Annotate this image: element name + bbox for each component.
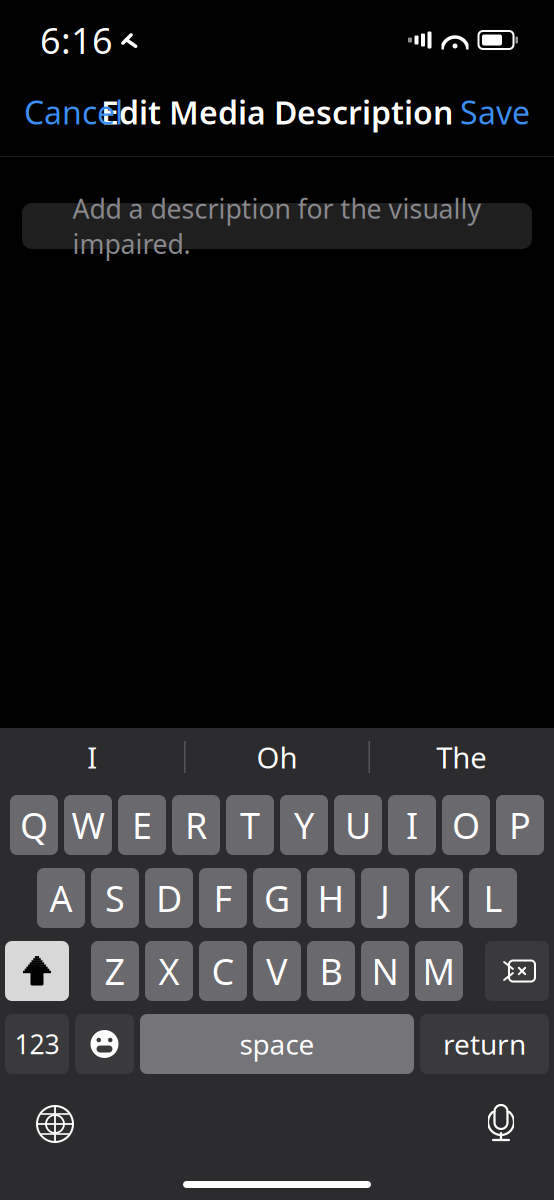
button[interactable]: U xyxy=(334,795,382,855)
staticText: A xyxy=(49,874,72,922)
staticText: S xyxy=(105,874,125,922)
button[interactable]: I xyxy=(388,795,436,855)
button[interactable]: R xyxy=(172,795,220,855)
staticText: J xyxy=(380,874,390,922)
staticText: 123 xyxy=(14,1026,59,1062)
button[interactable]: D xyxy=(145,868,193,928)
button[interactable]: space xyxy=(140,1014,414,1074)
button[interactable]: Save xyxy=(436,77,554,147)
staticText: T xyxy=(240,801,260,849)
button[interactable]: S xyxy=(91,868,139,928)
button[interactable]: return xyxy=(420,1014,549,1074)
button[interactable]: F xyxy=(199,868,247,928)
staticText: U xyxy=(345,801,371,849)
button[interactable]: Shift xyxy=(5,941,69,1001)
staticText: The xyxy=(436,737,487,776)
button[interactable]: P xyxy=(496,795,544,855)
staticText: Edit Media Description xyxy=(101,91,453,133)
staticText: 6:16 xyxy=(40,16,113,64)
staticText: W xyxy=(71,801,104,849)
button[interactable]: E xyxy=(118,795,166,855)
staticText: Oh xyxy=(256,737,297,776)
staticText: I xyxy=(87,737,97,776)
button[interactable]: Oh xyxy=(185,728,369,786)
button[interactable]: Y xyxy=(280,795,328,855)
button[interactable]: Emoji xyxy=(75,1014,134,1074)
staticText: D xyxy=(156,874,182,922)
staticText: M xyxy=(422,947,455,995)
button[interactable]: T xyxy=(226,795,274,855)
staticText: P xyxy=(509,801,531,849)
staticText: V xyxy=(266,947,288,995)
button[interactable]: H xyxy=(307,868,355,928)
staticText: Add a description for the visually impai… xyxy=(72,191,481,261)
staticText: B xyxy=(319,947,342,995)
staticText: space xyxy=(239,1025,314,1063)
button[interactable]: 123 xyxy=(5,1014,69,1074)
button[interactable]: A xyxy=(37,868,85,928)
button[interactable]: W xyxy=(64,795,112,855)
button[interactable]: Dictation xyxy=(460,1092,542,1156)
staticText: E xyxy=(132,801,152,849)
button[interactable]: M xyxy=(415,941,463,1001)
button[interactable]: B xyxy=(307,941,355,1001)
button[interactable]: Z xyxy=(91,941,139,1001)
button[interactable]: Next keyboard xyxy=(12,1093,98,1155)
button[interactable]: Cancel xyxy=(0,77,147,147)
staticText: X xyxy=(158,947,179,995)
button[interactable]: Delete xyxy=(485,941,549,1001)
button[interactable]: X xyxy=(145,941,193,1001)
button[interactable]: N xyxy=(361,941,409,1001)
button[interactable]: O xyxy=(442,795,490,855)
staticText: O xyxy=(452,801,480,849)
button[interactable]: C xyxy=(199,941,247,1001)
button[interactable]: L xyxy=(469,868,517,928)
button[interactable]: The xyxy=(369,728,554,786)
button[interactable]: Q xyxy=(10,795,58,855)
staticText: K xyxy=(428,874,450,922)
button[interactable]: Add a description for the visually impai… xyxy=(22,203,532,249)
staticText: L xyxy=(483,874,502,922)
staticText: Q xyxy=(20,801,48,849)
button[interactable]: K xyxy=(415,868,463,928)
staticText: H xyxy=(317,874,344,922)
staticText: C xyxy=(211,947,234,995)
button[interactable]: V xyxy=(253,941,301,1001)
staticText: N xyxy=(371,947,398,995)
staticText: G xyxy=(264,874,290,922)
staticText: Cancel xyxy=(24,91,123,133)
staticText: Y xyxy=(294,801,314,849)
button[interactable]: G xyxy=(253,868,301,928)
button[interactable]: I xyxy=(0,728,185,786)
staticText: return xyxy=(443,1025,526,1063)
button[interactable]: J xyxy=(361,868,409,928)
staticText: Z xyxy=(104,947,125,995)
staticText: F xyxy=(213,874,232,922)
staticText: R xyxy=(185,801,207,849)
staticText: I xyxy=(406,801,418,849)
staticText: Save xyxy=(460,91,530,133)
